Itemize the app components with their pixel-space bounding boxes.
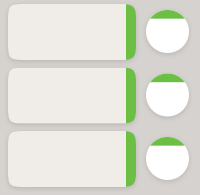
button[interactable]: [8, 131, 189, 187]
button[interactable]: [8, 67, 189, 123]
button[interactable]: [8, 4, 189, 60]
